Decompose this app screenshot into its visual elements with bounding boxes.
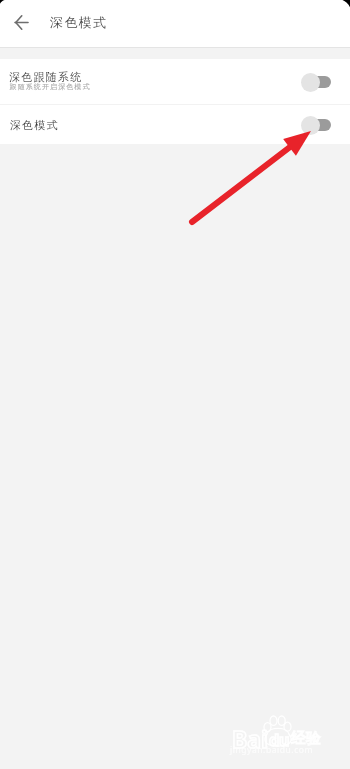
staticText: 经验 [291,729,321,748]
staticText: 跟随系统开启深色模式 [9,82,90,91]
staticText: jingyan.baidu.com [230,744,313,756]
staticText: du [269,729,290,751]
staticText: 深色模式 [9,118,58,132]
staticText: 深色模式 [50,14,108,30]
staticText: Bai [232,723,268,754]
button[interactable]: 深色跟随系统 [0,59,350,104]
button[interactable]: Toggle [301,72,331,92]
button[interactable]: 深色模式 [0,105,350,144]
button[interactable]: Back [0,3,42,45]
button[interactable]: Toggle [301,115,331,135]
staticText: 深色跟随系统 [9,70,83,84]
